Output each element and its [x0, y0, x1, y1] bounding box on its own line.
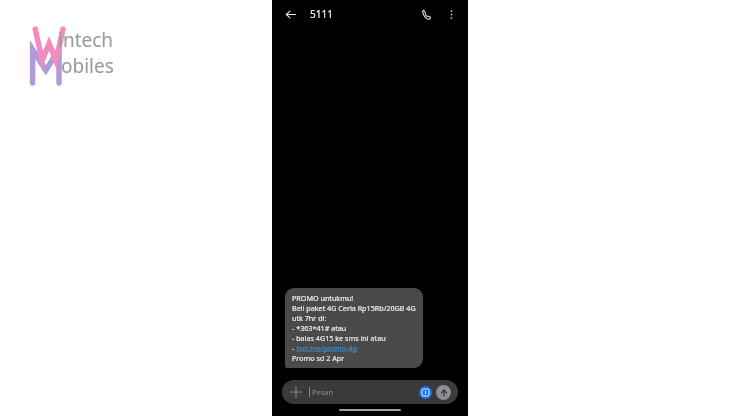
button[interactable]: Attach	[282, 380, 458, 404]
staticText: - tsel.me/promo-4g	[292, 343, 358, 353]
button[interactable]: PROMO untukmu!	[285, 288, 423, 368]
staticText: PROMO untukmu!	[292, 293, 354, 303]
staticText: Promo sd 2 Apr	[292, 353, 345, 363]
button[interactable]: Back	[280, 4, 300, 24]
staticText: 5111	[310, 7, 333, 21]
button[interactable]: SIM	[419, 386, 432, 399]
staticText: Pesan	[312, 387, 334, 397]
staticText: Beli paket 4G Ceria Rp15Rb/20GB 4G	[292, 303, 416, 313]
staticText: - balas 4G15 ke sms ini atau	[292, 333, 386, 343]
staticText: intech	[58, 27, 114, 53]
button[interactable]: Call	[416, 4, 436, 24]
button[interactable]: More options	[442, 5, 460, 23]
other: Attach	[289, 385, 303, 399]
button[interactable]: Send	[436, 385, 451, 400]
staticText: utk 7hr di:	[292, 313, 327, 323]
staticText: obiles	[61, 53, 114, 79]
staticText: - *363*41# atau	[292, 323, 347, 333]
